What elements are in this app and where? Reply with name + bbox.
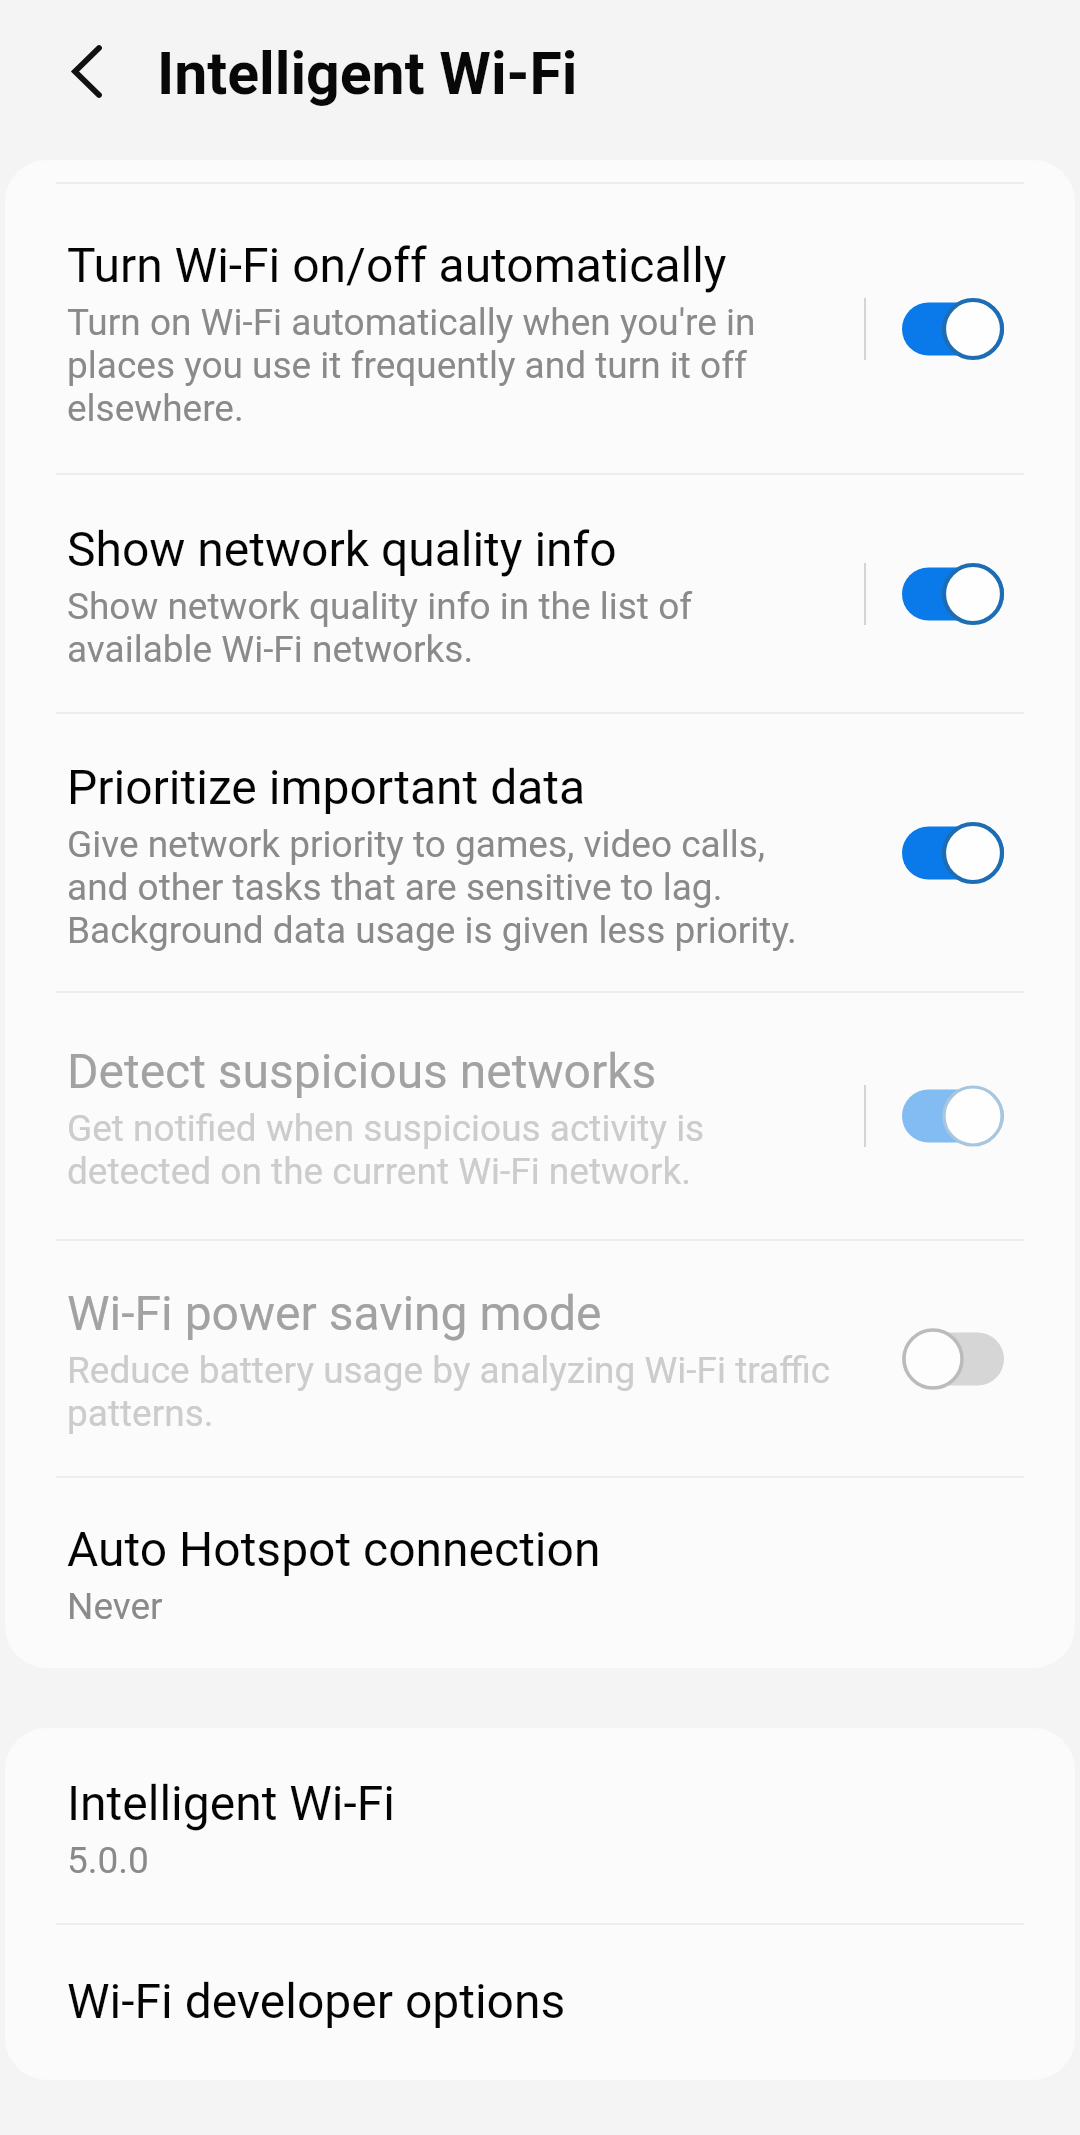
staticText: Detect suspicious networks [67,1044,657,1100]
button[interactable]: Prioritize important data [5,714,1075,991]
staticText: Give network priority to games, video ca… [67,823,833,952]
staticText: Wi-Fi power saving mode [67,1286,602,1342]
button[interactable]: On [902,822,1004,884]
button[interactable]: Show network quality info [5,475,1075,712]
button[interactable]: Intelligent Wi-Fi [5,1728,1075,1923]
button[interactable]: Wi-Fi power saving mode [5,1241,1075,1476]
button[interactable]: On [902,298,1004,360]
button[interactable]: Detect suspicious networks [5,993,1075,1239]
staticText: Prioritize important data [67,760,586,816]
staticText: Show network quality info in the list of… [67,585,833,671]
staticText: Reduce battery usage by analyzing Wi-Fi … [67,1349,833,1435]
staticText: Show network quality info [67,522,617,578]
button[interactable]: Wi-Fi developer options [5,1925,1075,2080]
staticText: Turn on Wi-Fi automatically when you're … [67,301,833,430]
staticText: 5.0.0 [67,1839,149,1882]
button[interactable]: Auto Hotspot connection [5,1478,1075,1668]
button[interactable]: Turn Wi-Fi on/off automatically [5,184,1075,473]
staticText: Never [67,1585,163,1628]
staticText: Turn Wi-Fi on/off automatically [67,238,727,294]
staticText: Intelligent Wi-Fi [157,39,578,108]
button[interactable]: Off [902,1328,1004,1390]
button[interactable]: On [902,563,1004,625]
staticText: Auto Hotspot connection [67,1522,601,1578]
staticText: Intelligent Wi-Fi [67,1776,395,1832]
button[interactable]: On [902,1085,1004,1147]
staticText: Get notified when suspicious activity is… [67,1107,833,1193]
staticText: Wi-Fi developer options [67,1974,566,2030]
button[interactable]: Navigate up [28,33,122,127]
